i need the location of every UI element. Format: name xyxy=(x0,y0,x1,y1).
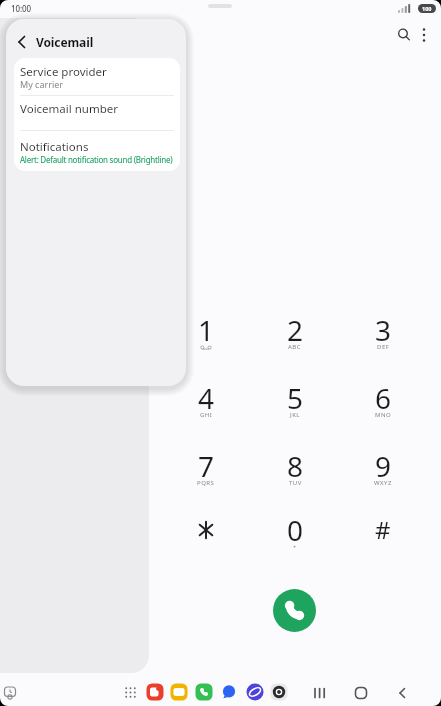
staticText: 100 xyxy=(422,5,432,12)
button[interactable]: 0 xyxy=(251,496,339,560)
staticText: + xyxy=(293,543,297,551)
staticText: # xyxy=(375,513,391,546)
button[interactable]: 7 xyxy=(162,432,250,496)
button[interactable] xyxy=(14,95,180,130)
staticText: 0 xyxy=(287,511,304,549)
staticText: PQRS xyxy=(197,479,215,487)
button[interactable] xyxy=(170,683,188,701)
button[interactable] xyxy=(146,683,164,701)
staticText: 6 xyxy=(375,379,392,417)
button[interactable]: 6 xyxy=(339,364,427,428)
staticText: ABC xyxy=(288,343,302,351)
staticText: 7 xyxy=(198,447,215,485)
button[interactable] xyxy=(195,683,213,701)
staticText: 4 xyxy=(198,379,215,417)
staticText: TUV xyxy=(289,479,302,487)
staticText: 10:00 xyxy=(11,3,31,14)
button[interactable] xyxy=(2,685,18,701)
staticText: My carrier xyxy=(20,78,64,90)
staticText: Alert: Default notification sound (Brigh… xyxy=(20,154,173,165)
button[interactable] xyxy=(270,683,288,701)
staticText: 8 xyxy=(287,447,304,485)
staticText: DEF xyxy=(377,343,390,351)
button[interactable]: 1 xyxy=(162,296,250,360)
button[interactable] xyxy=(14,58,180,95)
button[interactable]: 5 xyxy=(251,364,339,428)
button[interactable] xyxy=(246,683,264,701)
staticText: JKL xyxy=(290,411,300,419)
staticText: 5 xyxy=(287,379,304,417)
button[interactable]: 3 xyxy=(339,296,427,360)
staticText: Service provider xyxy=(20,64,107,80)
staticText: WXYZ xyxy=(374,479,392,487)
staticText: Voicemail xyxy=(36,34,94,50)
button[interactable]: 2 xyxy=(251,296,339,360)
button[interactable] xyxy=(123,685,138,700)
staticText: Voicemail number xyxy=(20,101,119,117)
staticText: 2 xyxy=(287,311,304,349)
staticText: Notifications xyxy=(20,139,89,155)
button[interactable] xyxy=(414,23,434,47)
button[interactable] xyxy=(392,23,416,47)
button[interactable]: 8 xyxy=(251,432,339,496)
button[interactable] xyxy=(14,130,180,171)
staticText: MNO xyxy=(375,411,392,419)
button[interactable] xyxy=(388,682,416,704)
staticText: 3 xyxy=(375,311,392,349)
button[interactable]: # xyxy=(339,495,427,559)
button[interactable] xyxy=(162,498,250,556)
staticText: GHI xyxy=(200,411,213,419)
button[interactable]: 9 xyxy=(339,432,427,496)
button[interactable] xyxy=(10,30,34,54)
button[interactable] xyxy=(273,589,316,632)
button[interactable] xyxy=(220,683,238,701)
staticText: 1 xyxy=(198,311,215,349)
staticText: 9 xyxy=(375,447,392,485)
button[interactable] xyxy=(347,682,375,704)
button[interactable]: 4 xyxy=(162,364,250,428)
button[interactable] xyxy=(306,682,334,704)
